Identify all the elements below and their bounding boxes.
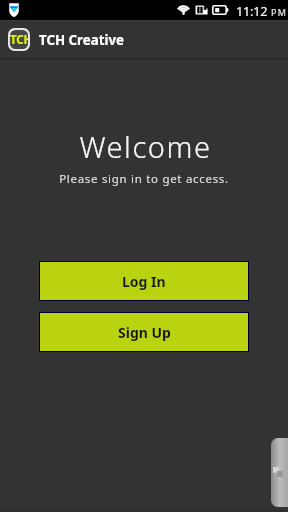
staticText: TCH [10, 32, 28, 48]
staticText: Log In [122, 272, 166, 291]
button[interactable]: Sign Up [40, 313, 248, 351]
staticText: Welcome [79, 127, 212, 166]
staticText: Please sign in to get access. [59, 171, 229, 187]
staticText: PM [271, 6, 288, 18]
staticText: Sign Up [118, 323, 171, 342]
staticText: 11:12 [236, 2, 268, 19]
button[interactable]: Open emulator panel [271, 438, 288, 507]
button[interactable]: Log In [40, 262, 248, 300]
staticText: TCH Creative [39, 31, 124, 49]
button[interactable]: TCH [0, 20, 132, 60]
